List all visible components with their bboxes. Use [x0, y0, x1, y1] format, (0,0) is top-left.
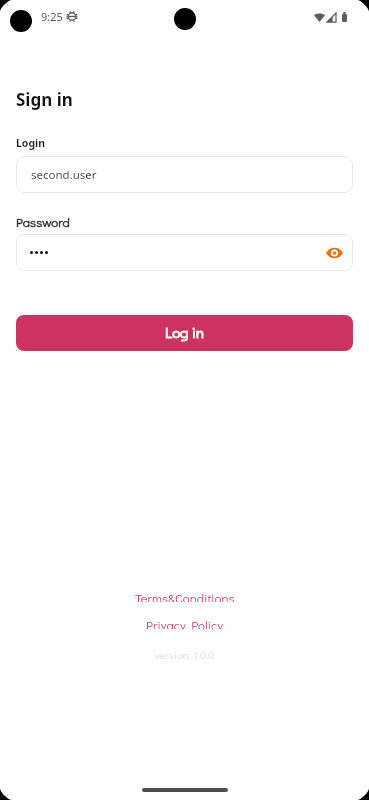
staticText: Password — [16, 213, 70, 230]
button[interactable]: Show password — [16, 234, 353, 271]
staticText: 9:25 — [41, 9, 63, 24]
staticText: Privacy Policy — [146, 616, 224, 629]
staticText: Login — [16, 136, 46, 150]
staticText: second.user — [31, 167, 97, 183]
staticText: Password — [16, 213, 70, 230]
staticText: version: 1.0.0 — [0, 647, 369, 661]
button[interactable]: second.user — [16, 156, 353, 193]
staticText: Log in — [165, 322, 204, 342]
staticText: Log in — [165, 322, 204, 342]
button[interactable]: Show password — [322, 241, 346, 265]
button[interactable]: Terms&Conditions — [129, 587, 241, 604]
button[interactable]: Privacy Policy — [140, 614, 230, 631]
staticText: Terms&Conditions — [135, 589, 235, 602]
button[interactable]: Log in — [16, 315, 353, 351]
staticText: Sign in — [16, 88, 73, 111]
